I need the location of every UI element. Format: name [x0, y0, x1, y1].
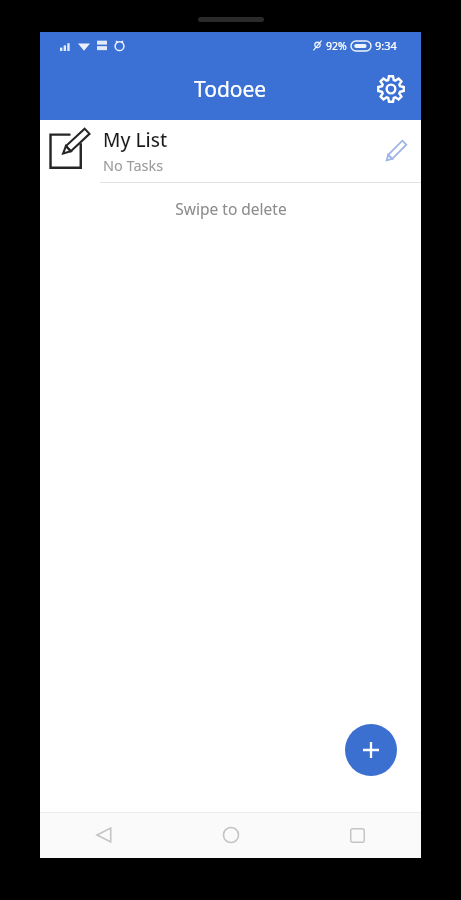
button[interactable]: Recent apps: [294, 812, 421, 858]
button[interactable]: Back: [40, 812, 167, 858]
staticText: My List: [103, 127, 168, 153]
staticText: 9:34: [375, 38, 397, 53]
button[interactable]: My List: [40, 120, 421, 182]
button[interactable]: Add list: [345, 724, 397, 776]
button[interactable]: Settings: [367, 65, 415, 113]
staticText: Todoee: [194, 75, 267, 104]
button[interactable]: Home: [167, 812, 294, 858]
staticText: No Tasks: [103, 155, 164, 175]
button[interactable]: Edit list: [373, 129, 417, 173]
staticText: Swipe to delete: [175, 198, 287, 219]
staticText: 92%: [326, 39, 347, 53]
